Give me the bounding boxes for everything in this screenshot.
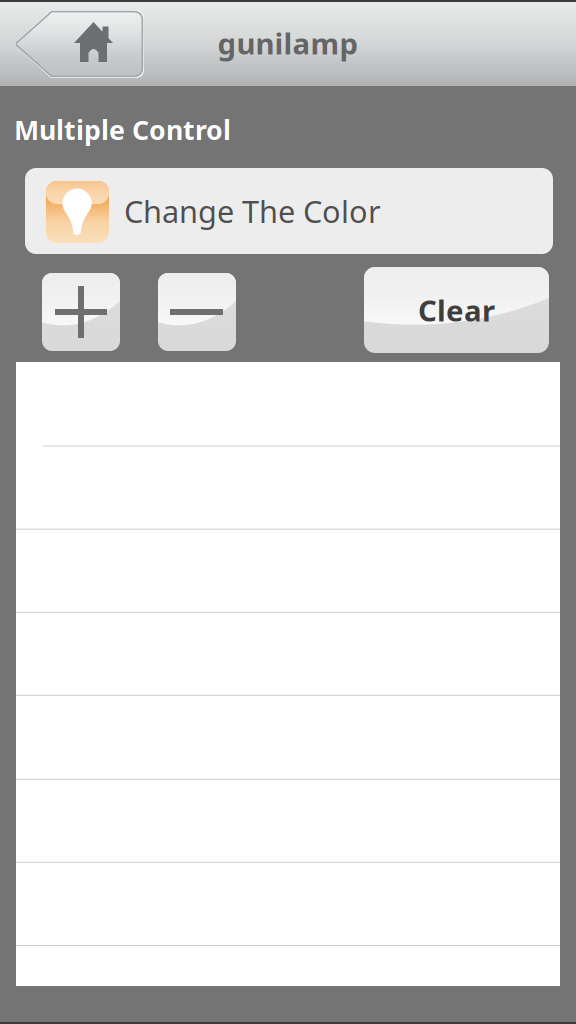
button[interactable]: Change The Color <box>25 168 553 254</box>
staticText: gunilamp <box>217 23 358 62</box>
button[interactable]: Add <box>42 273 120 351</box>
staticText: Multiple Control <box>14 112 231 147</box>
staticText: Change The Color <box>124 191 381 231</box>
button[interactable]: Clear <box>364 267 549 353</box>
button[interactable]: Home <box>4 8 146 80</box>
staticText: Clear <box>418 290 495 329</box>
button[interactable]: Remove <box>158 273 236 351</box>
